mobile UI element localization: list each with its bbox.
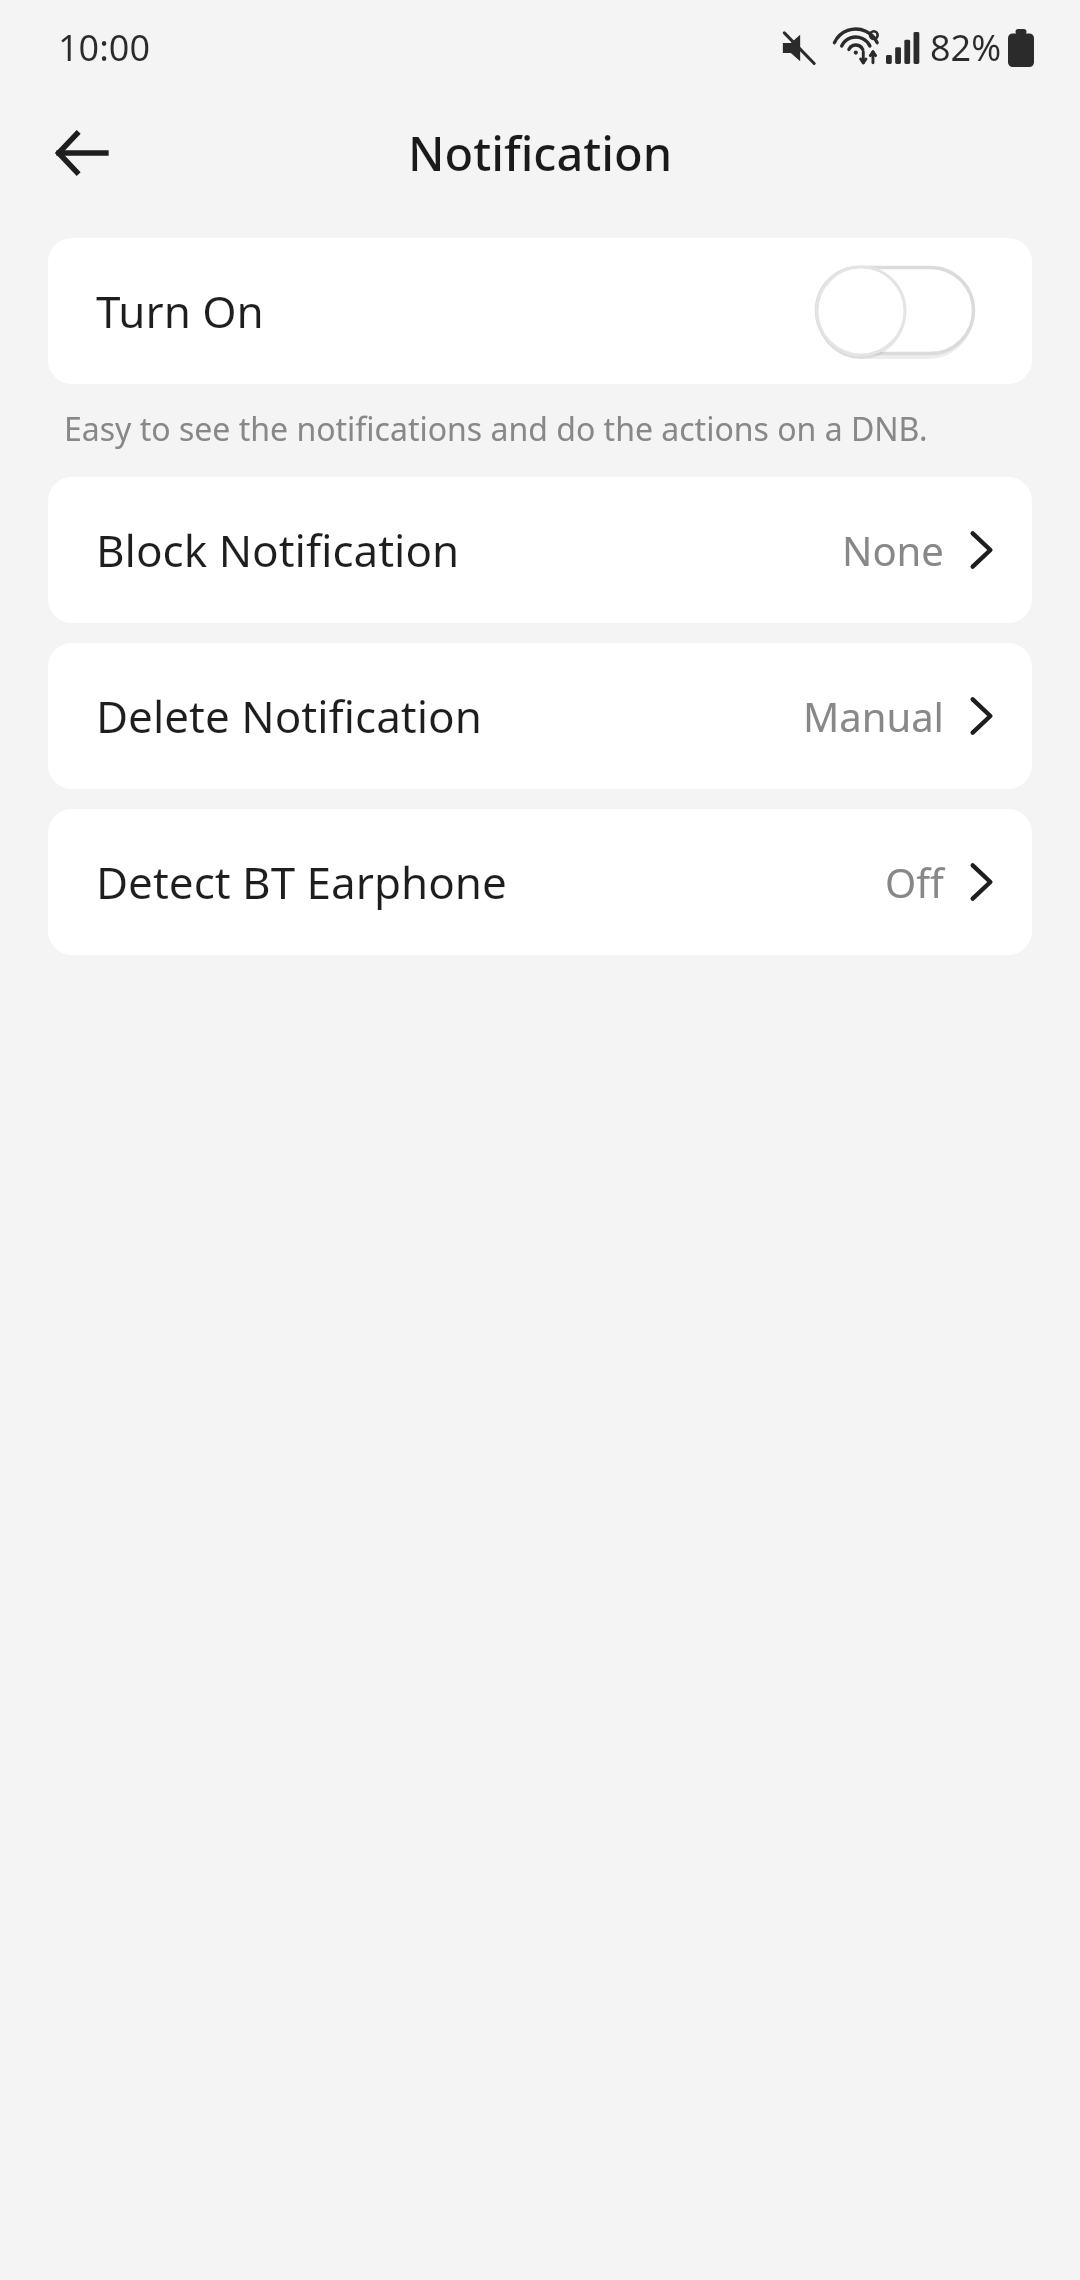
staticText: Turn On (96, 281, 264, 341)
staticText: Easy to see the notifications and do the… (64, 407, 928, 451)
staticText: Off (885, 855, 944, 909)
button[interactable]: Turn On toggle (815, 266, 975, 356)
staticText: None (842, 523, 944, 577)
staticText: Delete Notification (96, 686, 482, 746)
button[interactable]: Delete Notification (48, 643, 1032, 789)
staticText: 10:00 (58, 23, 151, 72)
staticText: Block Notification (96, 520, 460, 580)
button[interactable]: Back (30, 101, 134, 205)
button[interactable]: Turn On (48, 238, 1032, 384)
staticText: Manual (803, 689, 944, 743)
button[interactable]: Detect BT Earphone (48, 809, 1032, 955)
staticText: 82% (930, 23, 1002, 72)
staticText: Notification (408, 121, 673, 185)
staticText: Detect BT Earphone (96, 852, 507, 912)
button[interactable]: Block Notification (48, 477, 1032, 623)
